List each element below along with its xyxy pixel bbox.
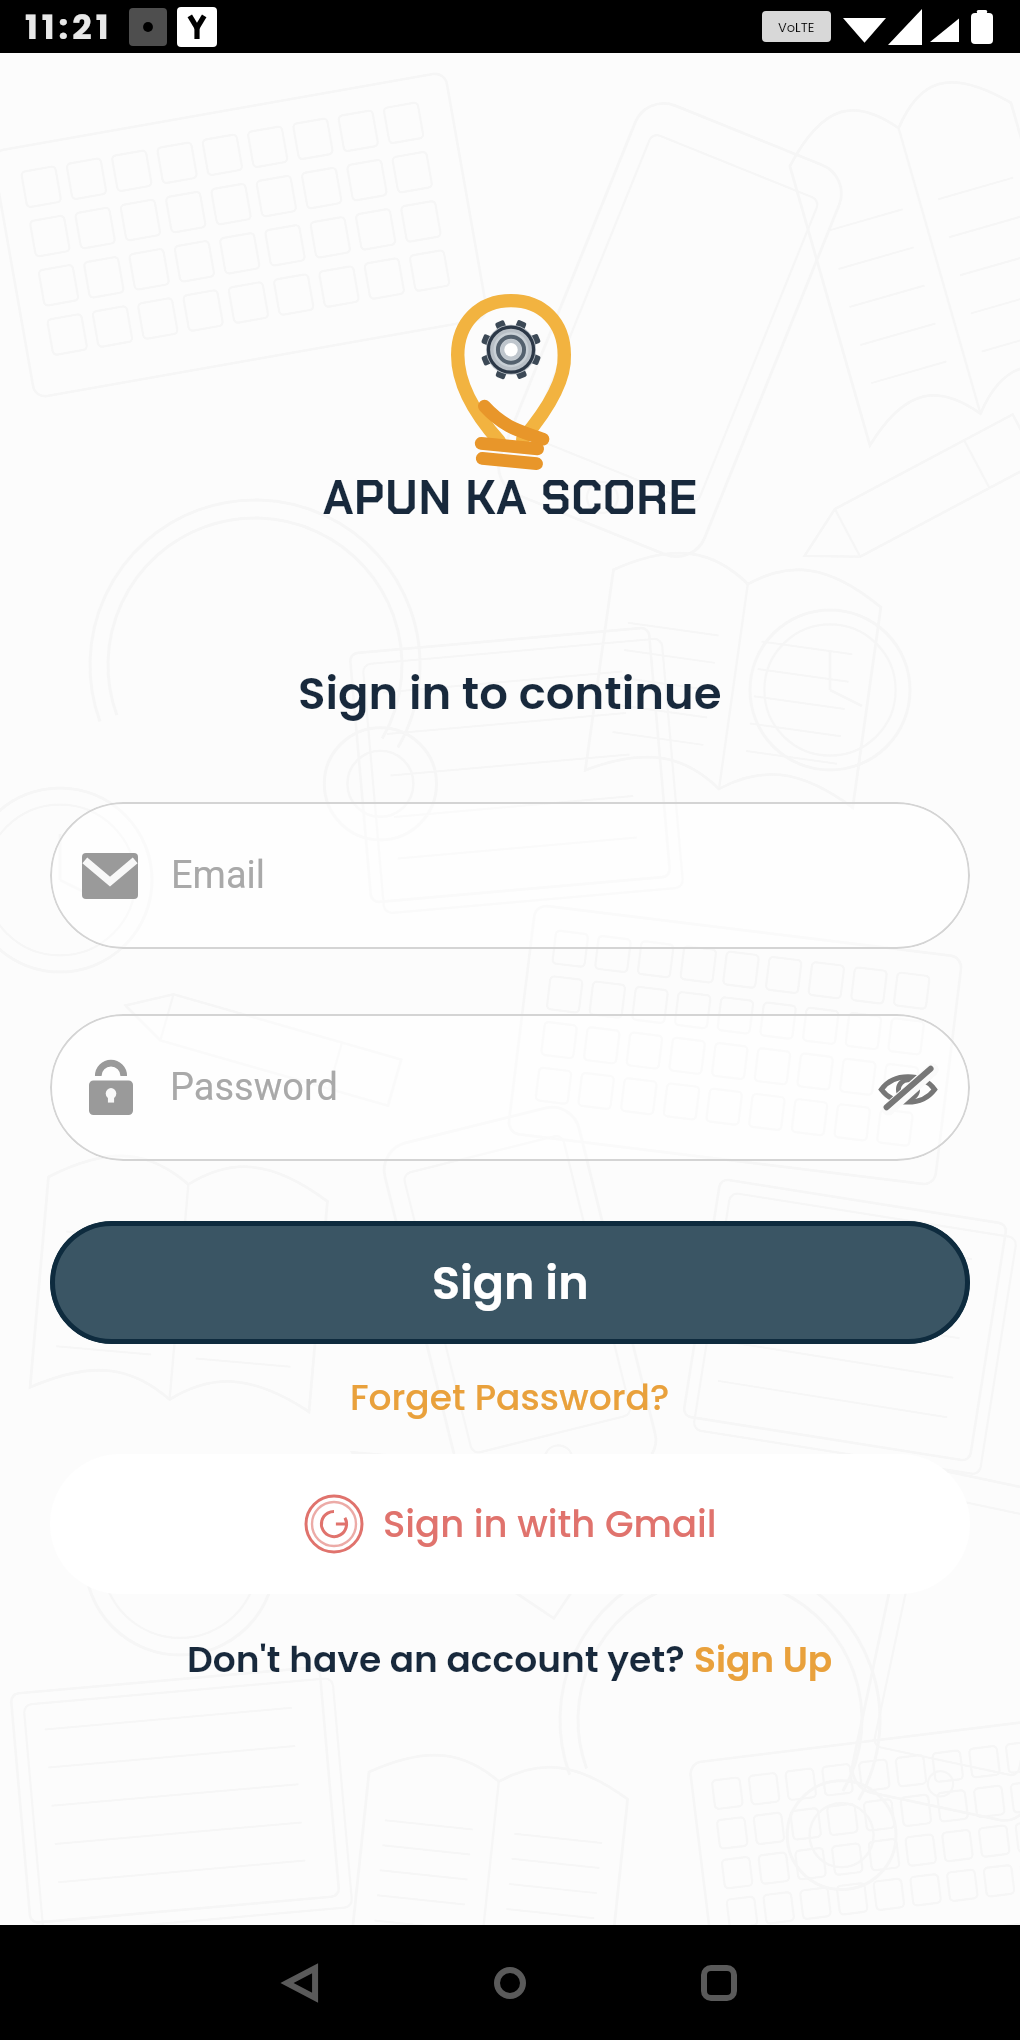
- staticText: Sign Up: [694, 1634, 833, 1684]
- staticText: Sign in: [432, 1251, 589, 1315]
- staticText: Forget Password?: [350, 1372, 670, 1422]
- button[interactable]: Recent apps: [673, 1937, 765, 2029]
- staticText: Sign in to continue: [298, 662, 722, 725]
- button[interactable]: Email: [50, 802, 970, 949]
- staticText: 11:21: [25, 3, 113, 51]
- button[interactable]: Show password: [870, 1050, 946, 1126]
- button[interactable]: Back: [255, 1937, 347, 2029]
- staticText: APUN KA SCORE: [323, 467, 698, 528]
- button[interactable]: Sign in with Gmail: [50, 1454, 970, 1594]
- button[interactable]: Home: [464, 1937, 556, 2029]
- button[interactable]: Forget Password?: [330, 1364, 690, 1430]
- staticText: VoLTE: [778, 18, 815, 36]
- staticText: Don't have an account yet?: [187, 1634, 694, 1684]
- button[interactable]: Password: [50, 1014, 970, 1161]
- button[interactable]: Sign Up: [694, 1634, 833, 1684]
- staticText: Sign in with Gmail: [383, 1498, 717, 1550]
- staticText: Email: [171, 853, 266, 898]
- staticText: Password: [170, 1065, 338, 1110]
- button[interactable]: Sign in: [50, 1221, 970, 1344]
